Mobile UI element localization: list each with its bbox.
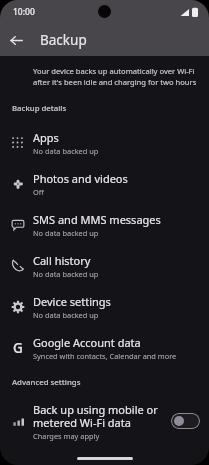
button[interactable]: Apps [0, 122, 209, 163]
staticText: Apps [33, 130, 59, 145]
staticText: Back up using mobile or metered Wi-Fi da… [33, 402, 158, 430]
staticText: Synced with contacts, Calendar and more [33, 351, 177, 361]
button[interactable]: Call history [0, 245, 209, 286]
staticText: Photos and videos [33, 171, 128, 186]
staticText: No data backed up [33, 146, 99, 156]
button[interactable]: Device settings [0, 286, 209, 327]
staticText: Backup [40, 31, 87, 49]
button[interactable]: Back [5, 29, 27, 51]
staticText: Google Account data [33, 335, 141, 350]
staticText: G [13, 339, 23, 356]
button[interactable]: G [0, 327, 209, 368]
staticText: Call history [33, 253, 91, 268]
button[interactable]: SMS and MMS messages [0, 204, 209, 245]
staticText: No data backed up [33, 269, 99, 279]
staticText: Advanced settings [12, 377, 81, 388]
staticText: No data backed up [33, 310, 99, 320]
staticText: Your device backs up automatically over … [33, 66, 197, 87]
staticText: Device settings [33, 294, 111, 309]
button[interactable]: Back up using mobile or metered Wi-Fi da… [171, 413, 200, 429]
staticText: No data backed up [33, 228, 99, 238]
staticText: Backup details [12, 103, 67, 114]
staticText: Off [33, 187, 44, 197]
staticText: 10:00 [13, 6, 35, 18]
staticText: SMS and MMS messages [33, 212, 161, 227]
staticText: Charges may apply [33, 431, 100, 441]
button[interactable]: Back up using mobile or metered Wi-Fi da… [0, 395, 209, 447]
button[interactable]: Photos and videos [0, 163, 209, 204]
